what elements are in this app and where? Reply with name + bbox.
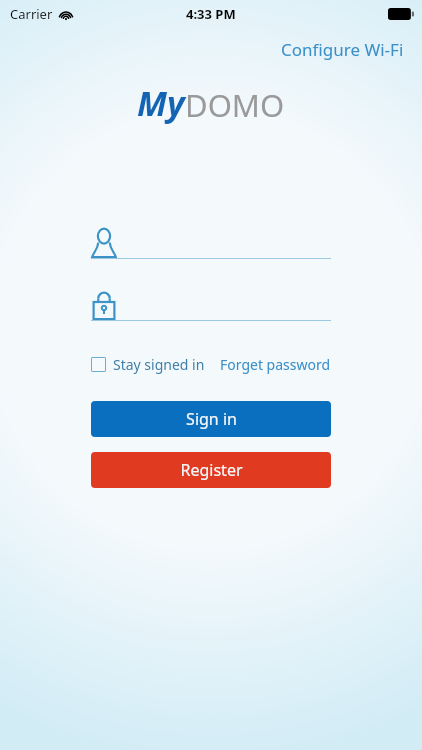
button[interactable]: Configure Wi-Fi xyxy=(279,36,406,63)
staticText: Configure Wi-Fi xyxy=(281,38,404,61)
button[interactable]: Register xyxy=(91,452,331,488)
button[interactable]: Sign in xyxy=(91,401,331,437)
button[interactable]: Password xyxy=(91,287,331,320)
staticText: Register xyxy=(180,459,243,481)
staticText: Sign in xyxy=(186,408,237,430)
staticText: My xyxy=(137,80,185,126)
button[interactable]: Username xyxy=(91,222,331,258)
staticText: Forget password xyxy=(220,355,331,374)
staticText: Stay signed in xyxy=(113,355,205,374)
button[interactable]: Forget password xyxy=(216,355,331,374)
staticText: 4:33 PM xyxy=(186,5,236,23)
button[interactable]: Stay signed in xyxy=(91,355,209,374)
staticText: DOMO xyxy=(185,84,285,126)
staticText: Carrier xyxy=(10,5,53,23)
